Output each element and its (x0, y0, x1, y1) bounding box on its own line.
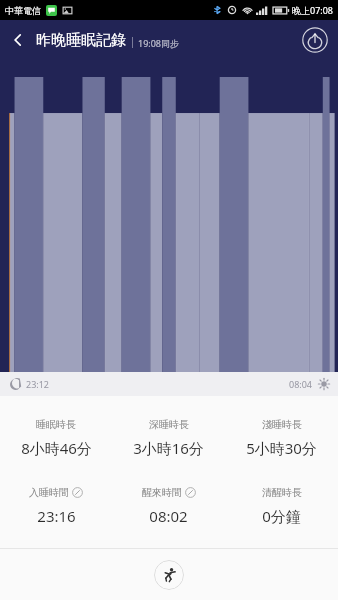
staticText: 晚上07:08 (292, 4, 334, 16)
staticText: 8小時46分 (21, 438, 92, 458)
staticText: 深睡時長 (149, 418, 189, 431)
button[interactable]: Activity (154, 560, 184, 590)
button[interactable]: Back (0, 22, 36, 58)
staticText: 醒來時間 (142, 486, 182, 499)
button[interactable]: Share (302, 27, 328, 53)
staticText: 23:12 (26, 378, 50, 390)
staticText: 23:16 (37, 506, 76, 526)
button[interactable]: 深睡時長 (112, 418, 225, 458)
button[interactable]: 清醒時長 (225, 486, 338, 526)
button[interactable]: 睡眠時長 (0, 418, 112, 458)
button[interactable]: 醒來時間 (112, 486, 225, 526)
staticText: 清醒時長 (262, 486, 302, 499)
staticText: 睡眠時長 (36, 418, 76, 431)
staticText: 中華電信 (5, 5, 41, 16)
staticText: 0分鐘 (262, 506, 301, 526)
staticText: 入睡時間 (29, 486, 69, 499)
staticText: 淺睡時長 (262, 418, 302, 431)
staticText: 昨晚睡眠記錄 (36, 31, 126, 50)
staticText: 08:04 (289, 378, 313, 390)
staticText: 5小時30分 (246, 438, 317, 458)
button[interactable]: 淺睡時長 (225, 418, 338, 458)
button[interactable]: 入睡時間 (0, 486, 112, 526)
staticText: 3小時16分 (133, 438, 204, 458)
staticText: 19:08同步 (138, 37, 180, 49)
staticText: 08:02 (149, 506, 188, 526)
